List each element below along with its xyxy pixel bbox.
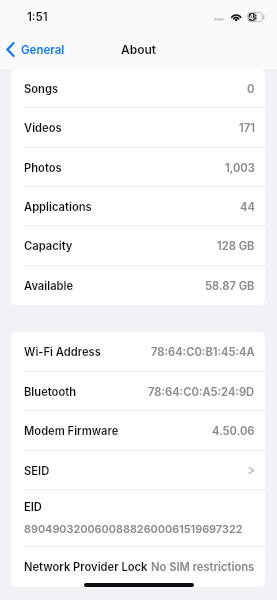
staticText: About [121, 42, 157, 57]
button[interactable]: EID [11, 490, 265, 547]
button[interactable]: Applications [11, 187, 265, 226]
staticText: 171 [239, 121, 255, 135]
staticText: 4 [249, 13, 254, 21]
staticText: 1:51 [27, 10, 48, 24]
button[interactable]: Photos [11, 148, 265, 187]
staticText: 44 [240, 200, 255, 214]
staticText: Capacity [24, 239, 73, 253]
staticText: 78:64:C0:B1:45:4A [151, 345, 255, 359]
staticText: Videos [24, 121, 62, 135]
staticText: Songs [24, 82, 59, 96]
staticText: Network Provider Lock [24, 560, 148, 574]
staticText: Bluetooth [24, 385, 77, 399]
staticText: SEID [24, 464, 50, 478]
staticText: 89049032006008882600061519697322 [24, 522, 243, 535]
staticText: EID [24, 500, 42, 514]
staticText: Wi-Fi Address [24, 345, 101, 359]
staticText: 8 [253, 13, 258, 21]
staticText: 78:64:C0:A5:24:9D [148, 385, 255, 399]
staticText: 58.87 GB [205, 279, 255, 293]
staticText: 0 [247, 82, 255, 96]
button[interactable]: Network Provider Lock [11, 547, 265, 587]
button[interactable]: Bluetooth [11, 372, 265, 411]
button[interactable]: Capacity [11, 226, 265, 266]
staticText: 4.50.06 [212, 424, 255, 438]
staticText: No SIM restrictions [151, 560, 255, 574]
button[interactable]: Wi-Fi Address [11, 332, 265, 372]
staticText: Available [24, 279, 74, 293]
button[interactable]: Modem Firmware [11, 411, 265, 451]
staticText: Applications [24, 200, 92, 214]
button[interactable]: Songs [11, 69, 265, 108]
other: Battery 48 percent [249, 13, 262, 21]
staticText: General [21, 43, 65, 57]
button[interactable]: Videos [11, 108, 265, 148]
staticText: Modem Firmware [24, 424, 119, 438]
staticText: 128 GB [217, 239, 255, 253]
staticText: 1,003 [225, 161, 255, 175]
button[interactable]: General [6, 42, 65, 57]
button[interactable]: SEID [11, 451, 265, 490]
staticText: Photos [24, 161, 62, 175]
button[interactable]: Available [11, 266, 265, 305]
